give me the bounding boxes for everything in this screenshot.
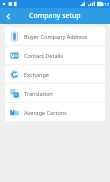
button[interactable]: Exchange bbox=[5, 65, 105, 83]
button[interactable]: Buyer Company Address bbox=[5, 27, 105, 45]
staticText: Average Cartons bbox=[24, 109, 67, 116]
button[interactable]: Average Cartons bbox=[5, 103, 105, 121]
staticText: Exchange bbox=[24, 71, 49, 78]
staticText: Company setup bbox=[29, 11, 81, 21]
staticText: Buyer Company Address bbox=[24, 33, 88, 40]
button[interactable]: Translation bbox=[5, 84, 105, 102]
staticText: 6:17 bbox=[101, 2, 109, 7]
staticText: Contact Details bbox=[24, 52, 63, 59]
staticText: Translation bbox=[24, 90, 53, 97]
button[interactable]: Back bbox=[0, 8, 16, 24]
button[interactable]: Contact Details bbox=[5, 46, 105, 64]
